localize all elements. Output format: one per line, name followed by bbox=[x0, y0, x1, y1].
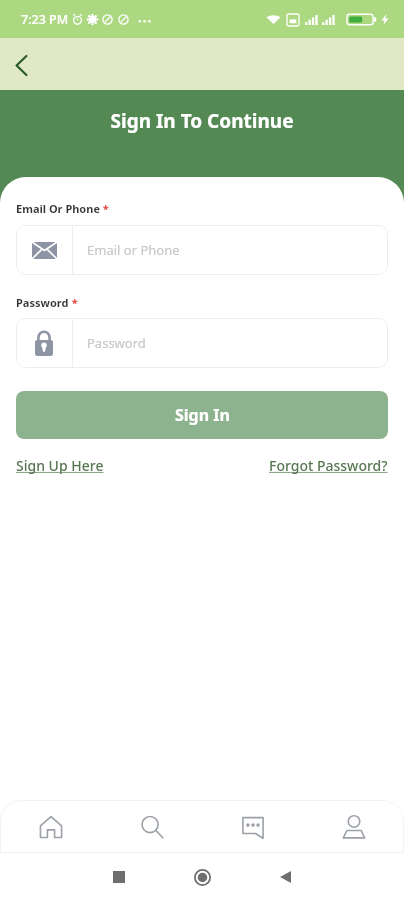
staticText: Password bbox=[16, 295, 69, 310]
button[interactable]: Search bbox=[101, 800, 202, 853]
staticText: Email Or Phone bbox=[16, 201, 100, 216]
staticText: Email or Phone bbox=[87, 241, 180, 259]
button[interactable]: Recents bbox=[106, 864, 132, 890]
staticText: Sign Up Here bbox=[16, 456, 104, 475]
staticText: Password bbox=[87, 334, 146, 352]
staticText: Sign In To Continue bbox=[0, 108, 404, 134]
button[interactable]: Home bbox=[0, 800, 101, 853]
button[interactable]: Sign In bbox=[16, 391, 388, 439]
staticText: * bbox=[69, 295, 78, 310]
staticText: Sign In bbox=[175, 404, 230, 426]
button[interactable]: Profile bbox=[303, 800, 404, 853]
staticText: * bbox=[100, 201, 109, 216]
button[interactable]: Back bbox=[2, 45, 40, 83]
staticText: 7:23 PM bbox=[21, 11, 69, 28]
button[interactable]: Home bbox=[189, 864, 215, 890]
button[interactable]: Email or Phone bbox=[16, 225, 388, 275]
button[interactable]: Sign Up Here bbox=[16, 456, 104, 475]
button[interactable]: Forgot Password? bbox=[269, 456, 388, 475]
button[interactable]: Messages bbox=[202, 800, 303, 853]
staticText: Forgot Password? bbox=[269, 456, 388, 475]
button[interactable]: Password bbox=[16, 318, 388, 368]
button[interactable]: Back bbox=[272, 864, 298, 890]
